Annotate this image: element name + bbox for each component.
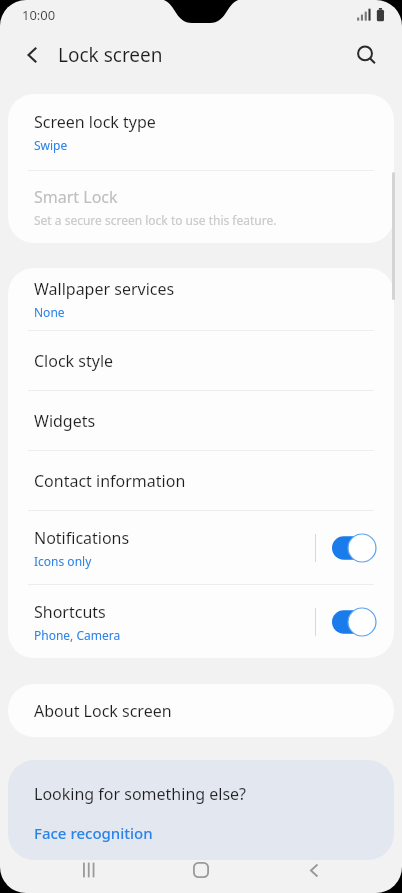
button[interactable]: Face recognition [34,823,153,843]
button[interactable]: Smart Lock [8,171,394,243]
button[interactable]: Shortcuts [8,585,394,658]
staticText: Widgets [34,410,96,432]
button[interactable]: About Lock screen [8,684,394,737]
staticText: Notifications [34,527,130,549]
staticText: Screen lock type [34,111,156,133]
button[interactable]: Recents [68,850,108,890]
button[interactable]: Back [294,850,334,890]
staticText: Looking for something else? [34,783,247,805]
staticText: Wallpaper services [34,278,175,300]
staticText: 10:00 [22,6,56,24]
button[interactable]: Home [181,850,221,890]
button[interactable]: Toggle [332,607,376,637]
staticText: Icons only [34,553,92,569]
staticText: Shortcuts [34,601,106,623]
staticText: Clock style [34,350,114,372]
button[interactable]: Notifications [8,511,394,584]
staticText: Lock screen [58,42,163,68]
staticText: Face recognition [34,823,153,843]
button[interactable]: Back [12,34,54,76]
button[interactable]: Search [345,34,387,76]
staticText: About Lock screen [34,700,172,722]
button[interactable]: Wallpaper services [8,268,394,330]
staticText: Set a secure screen lock to use this fea… [34,212,277,228]
staticText: Smart Lock [34,186,118,208]
button[interactable]: Widgets [8,391,394,450]
button[interactable]: Screen lock type [8,94,394,170]
button[interactable]: Clock style [8,331,394,390]
button[interactable]: Contact information [8,451,394,510]
staticText: Contact information [34,470,186,492]
button[interactable]: Toggle [332,533,376,563]
staticText: None [34,304,65,320]
staticText: Swipe [34,137,68,153]
staticText: Phone, Camera [34,627,121,643]
